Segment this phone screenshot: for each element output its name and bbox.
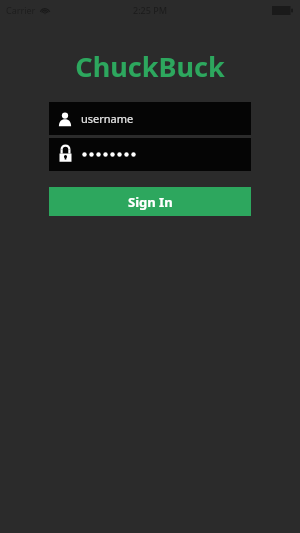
staticText: username [81, 111, 134, 126]
staticText: Carrier [6, 4, 36, 16]
button[interactable]: username [49, 102, 251, 135]
button[interactable] [49, 138, 251, 171]
button[interactable]: Sign In [49, 187, 251, 216]
staticText: Sign In [128, 193, 173, 211]
staticText: ChuckBuck [0, 48, 300, 85]
staticText: 2:25 PM [133, 4, 167, 16]
